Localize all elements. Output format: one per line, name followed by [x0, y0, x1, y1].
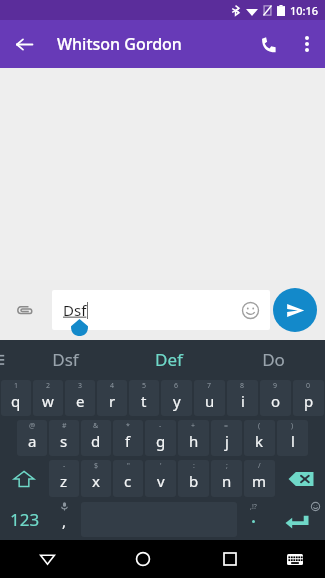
button[interactable]: More options	[289, 26, 325, 62]
staticText: 1	[14, 381, 19, 391]
staticText: 7	[207, 381, 212, 391]
button[interactable]: Call	[249, 24, 289, 64]
staticText: 5	[142, 381, 147, 391]
button[interactable]: -	[145, 420, 176, 456]
button[interactable]: Home	[95, 540, 191, 578]
staticText: Def	[155, 348, 183, 371]
button[interactable]: Emoji	[236, 296, 264, 324]
button[interactable]: =	[211, 420, 242, 456]
button[interactable]: 6	[161, 380, 192, 416]
button[interactable]: Do	[221, 340, 325, 378]
button[interactable]: :	[178, 460, 209, 497]
button[interactable]: Def	[117, 340, 221, 378]
staticText: d	[91, 431, 101, 451]
button[interactable]: /	[244, 460, 275, 497]
staticText: *	[126, 421, 130, 431]
button[interactable]: 8	[227, 380, 258, 416]
button[interactable]: Shift	[1, 460, 47, 497]
staticText: )	[291, 421, 294, 431]
staticText: Whitson Gordon	[57, 33, 182, 55]
button[interactable]: Backspace	[277, 460, 324, 497]
button[interactable]: 5	[129, 380, 159, 416]
button[interactable]: 9	[260, 380, 291, 416]
button[interactable]: Back	[6, 26, 42, 62]
button[interactable]: 1	[1, 380, 31, 416]
staticText: Do	[262, 348, 285, 371]
staticText: #	[62, 421, 67, 431]
button[interactable]: 2	[33, 380, 63, 416]
staticText: o	[271, 391, 281, 411]
staticText: 4	[110, 381, 115, 391]
staticText: Dsf	[52, 348, 79, 371]
button[interactable]: (	[244, 420, 275, 456]
button[interactable]: $	[81, 460, 111, 497]
staticText: q	[11, 391, 21, 411]
staticText: p	[304, 391, 314, 411]
staticText: $	[94, 461, 99, 471]
button[interactable]: Comma	[50, 501, 79, 538]
staticText: 10:16	[290, 3, 319, 18]
staticText: m	[252, 471, 267, 491]
staticText: 123	[10, 508, 40, 531]
button[interactable]: 123	[1, 501, 48, 538]
staticText: =	[224, 421, 229, 431]
button[interactable]: Hide keyboard	[0, 540, 95, 578]
button[interactable]: +	[178, 420, 209, 456]
button[interactable]: 3	[65, 380, 95, 416]
staticText: n	[222, 471, 232, 491]
button[interactable]: #	[49, 420, 79, 456]
button[interactable]: )	[277, 420, 308, 456]
button[interactable]: Period	[239, 501, 268, 538]
staticText: s	[60, 431, 68, 451]
staticText: e	[76, 391, 85, 411]
staticText: j	[225, 431, 229, 451]
staticText: ;	[226, 461, 228, 471]
staticText: 8	[240, 381, 245, 391]
staticText: ,!?	[250, 502, 257, 512]
button[interactable]: Dsf	[14, 340, 117, 378]
staticText: b	[189, 471, 199, 491]
staticText: v	[157, 471, 165, 491]
staticText: l	[291, 431, 295, 451]
staticText: u	[205, 391, 215, 411]
button[interactable]: Switch keyboard	[268, 540, 321, 578]
staticText: c	[124, 471, 132, 491]
staticText: 2	[46, 381, 51, 391]
staticText: w	[42, 391, 54, 411]
button[interactable]: Send	[273, 288, 317, 332]
staticText: -	[63, 461, 66, 471]
button[interactable]: 4	[97, 380, 127, 416]
button[interactable]: '	[145, 460, 176, 497]
button[interactable]: @	[17, 420, 47, 456]
staticText: 3	[78, 381, 83, 391]
button[interactable]: Recents	[191, 540, 268, 578]
staticText: (	[258, 421, 261, 431]
button[interactable]: Attach	[7, 293, 41, 327]
staticText: k	[255, 431, 264, 451]
staticText: g	[156, 431, 166, 451]
button[interactable]: "	[113, 460, 143, 497]
button[interactable]: ;	[211, 460, 242, 497]
staticText: :	[193, 461, 195, 471]
staticText: t	[141, 391, 147, 411]
staticText: r	[109, 391, 116, 411]
staticText: "	[127, 461, 130, 471]
staticText: x	[92, 471, 100, 491]
staticText: ,	[62, 511, 67, 531]
staticText: +	[191, 421, 196, 431]
staticText: f	[125, 431, 131, 451]
button[interactable]: *	[113, 420, 143, 456]
staticText: 9	[273, 381, 278, 391]
button[interactable]: Dsf	[52, 290, 270, 330]
staticText: /	[258, 461, 261, 471]
button[interactable]: &	[81, 420, 111, 456]
button[interactable]: 0	[293, 380, 324, 416]
button[interactable]: Enter	[270, 501, 324, 538]
staticText: h	[189, 431, 199, 451]
staticText: 0	[306, 381, 311, 391]
staticText: @	[29, 421, 36, 431]
button[interactable]: -	[49, 460, 79, 497]
button[interactable]: 7	[194, 380, 225, 416]
staticText: -	[159, 421, 162, 431]
